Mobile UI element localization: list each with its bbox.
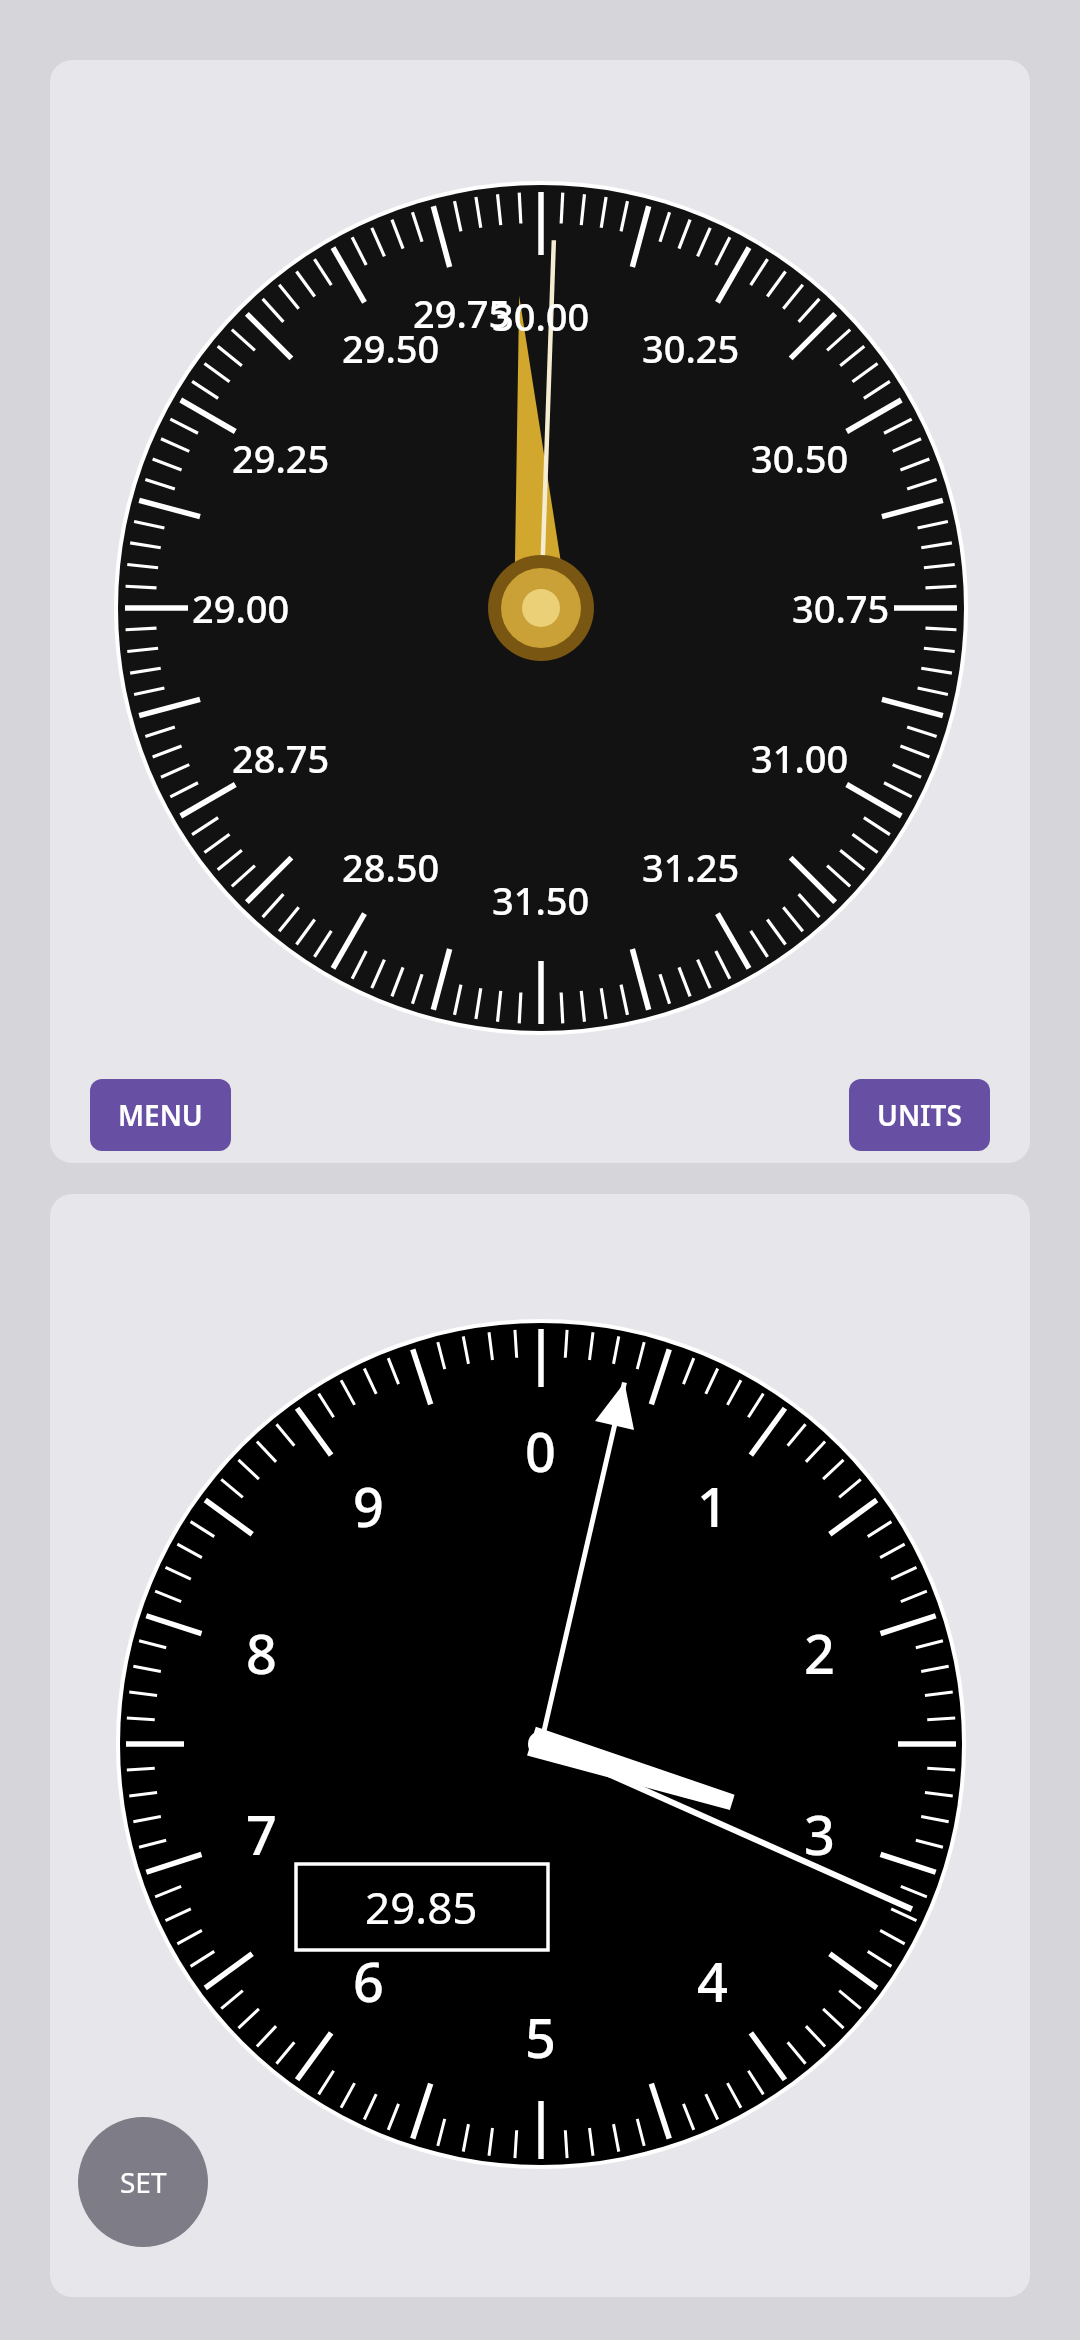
staticText: 29.00 [192,582,290,634]
staticText: 8 [246,1616,277,1690]
staticText: 9 [353,1469,384,1543]
button[interactable]: UNITS [849,1079,990,1151]
staticText: 31.50 [492,874,590,926]
staticText: 29.75 [413,287,511,339]
button[interactable]: MENU [90,1079,231,1151]
staticText: 29.50 [342,322,440,374]
staticText: 30.25 [642,322,740,374]
staticText: 0 [525,1414,556,1488]
staticText: 2 [804,1616,835,1690]
staticText: 29.25 [232,432,330,484]
staticText: 4 [697,1944,728,2018]
staticText: 31.25 [642,841,740,893]
button[interactable]: Set altimeter reference [78,2117,208,2247]
staticText: 1 [697,1469,728,1543]
staticText: 7 [246,1797,277,1871]
staticText: MENU [118,1096,203,1134]
staticText: SET [120,2163,167,2201]
staticText: UNITS [877,1096,962,1134]
staticText: 30.50 [751,432,849,484]
staticText: 28.50 [342,841,440,893]
staticText: 28.75 [232,732,330,784]
staticText: 30.75 [792,582,890,634]
staticText: 31.00 [751,732,849,784]
staticText: 29.85 [365,1877,478,1937]
staticText: 3 [804,1797,835,1871]
staticText: 5 [525,2000,556,2074]
staticText: 30.00 [492,290,590,342]
staticText: 6 [353,1944,384,2018]
